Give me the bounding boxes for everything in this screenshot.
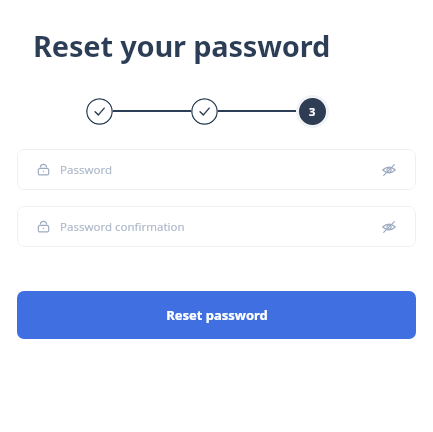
button[interactable]: Current step 3 bbox=[296, 95, 329, 128]
button[interactable]: Reset password bbox=[17, 291, 416, 339]
button[interactable]: Show password bbox=[376, 157, 402, 183]
staticText: Reset your password bbox=[33, 26, 331, 65]
staticText: 3 bbox=[309, 104, 316, 119]
button[interactable]: Password bbox=[17, 149, 416, 190]
button[interactable]: Completed step bbox=[191, 98, 218, 125]
button[interactable]: Password confirmation bbox=[17, 206, 416, 247]
button[interactable]: Completed step bbox=[86, 98, 113, 125]
staticText: Reset password bbox=[166, 306, 268, 324]
staticText: Password confirmation bbox=[60, 219, 185, 235]
staticText: Password bbox=[60, 162, 113, 178]
button[interactable]: Show password bbox=[376, 214, 402, 240]
